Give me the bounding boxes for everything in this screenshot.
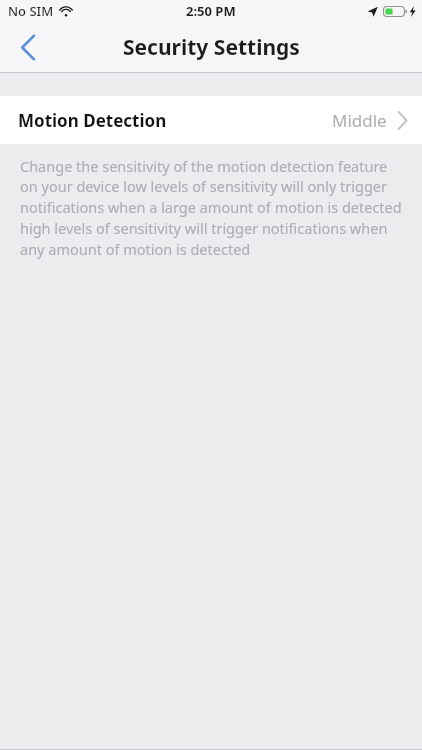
staticText: No SIM — [8, 2, 54, 20]
staticText: Middle — [332, 109, 387, 132]
staticText: Security Settings — [123, 33, 300, 62]
staticText: 2:50 PM — [186, 2, 236, 20]
staticText: Motion Detection — [18, 109, 167, 132]
button[interactable]: Motion Detection — [0, 96, 422, 144]
staticText: Change the sensitivity of the motion det… — [20, 156, 402, 260]
button[interactable]: Back — [0, 22, 56, 72]
